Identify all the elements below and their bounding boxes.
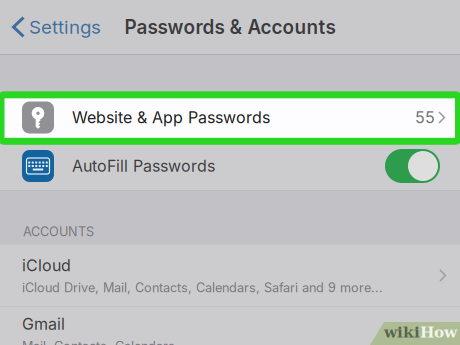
staticText: iCloud [22,256,71,275]
staticText: ACCOUNTS [23,224,94,239]
button[interactable]: iCloud [0,245,460,306]
staticText: Website & App Passwords [72,108,270,127]
staticText: Passwords & Accounts [124,15,335,38]
staticText: iCloud Drive, Mail, Contacts, Calendars,… [22,280,383,295]
staticText: Settings [29,16,101,38]
button[interactable]: AutoFill Passwords [0,142,460,190]
staticText: Gmail [22,314,65,334]
staticText: Mail, Contacts, Calendars [22,338,175,345]
button[interactable]: Gmail [0,307,460,345]
button[interactable]: Website & App Passwords [0,94,460,141]
staticText: How [420,323,457,341]
staticText: wiki [384,323,420,341]
staticText: 55 [415,108,435,127]
staticText: AutoFill Passwords [72,156,215,176]
button[interactable]: Settings [0,0,109,54]
